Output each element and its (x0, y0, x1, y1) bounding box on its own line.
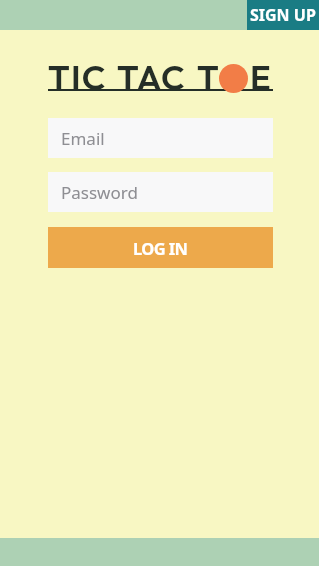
staticText: E (250, 55, 272, 98)
staticText: SIGN UP (250, 4, 316, 26)
button[interactable]: SIGN UP (247, 0, 319, 30)
staticText: LOG IN (133, 237, 188, 259)
button[interactable]: Password (48, 172, 273, 212)
staticText: TAC (117, 55, 186, 98)
staticText: T (197, 55, 220, 98)
button[interactable]: Email (48, 118, 273, 158)
staticText: Email (61, 127, 105, 150)
staticText: Password (61, 181, 138, 204)
staticText: TIC (48, 55, 107, 98)
button[interactable]: LOG IN (48, 227, 273, 268)
